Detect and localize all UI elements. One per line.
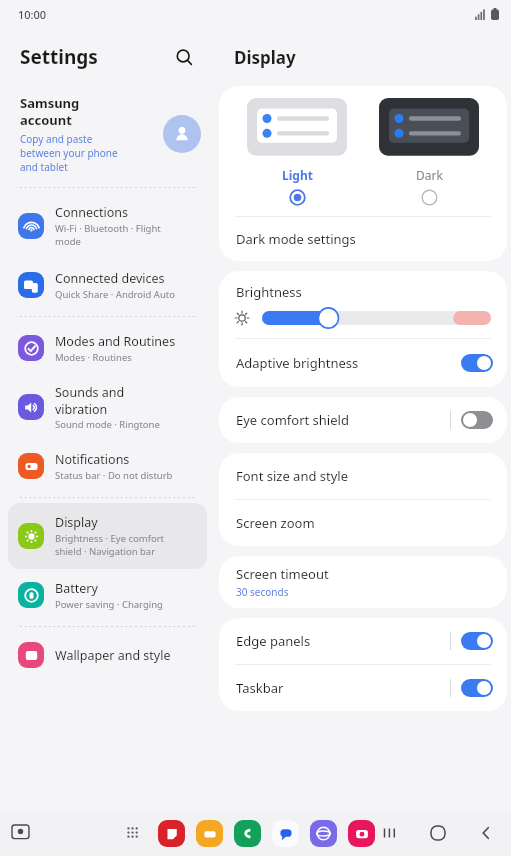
staticText: Eye comfort shield: [236, 411, 450, 429]
staticText: Sound mode · Ringtone: [55, 418, 160, 431]
staticText: Notifications: [55, 451, 130, 468]
staticText: Edge panels: [236, 632, 450, 650]
button[interactable]: Notifications: [8, 440, 207, 492]
button[interactable]: Internet: [310, 820, 337, 847]
staticText: Modes · Routines: [55, 351, 132, 364]
button[interactable]: Screen zoom: [219, 500, 507, 546]
staticText: Brightness · Eye comfort shield · Naviga…: [55, 532, 165, 558]
button[interactable]: Adaptive brightness: [219, 339, 507, 387]
button[interactable]: Samsung account: [0, 86, 215, 182]
staticText: Modes and Routines: [55, 333, 176, 350]
button[interactable]: Recents: [377, 820, 403, 846]
staticText: Wi-Fi · Bluetooth · Flight mode: [55, 222, 161, 248]
staticText: Wallpaper and style: [55, 647, 171, 664]
staticText: Quick Share · Android Auto: [55, 288, 175, 301]
button[interactable]: Recent apps panel: [6, 819, 34, 847]
button[interactable]: Phone: [234, 820, 261, 847]
staticText: Display: [234, 46, 296, 69]
staticText: Display: [55, 514, 98, 531]
staticText: Taskbar: [236, 679, 450, 697]
button[interactable]: Connected devices: [8, 259, 207, 311]
button[interactable]: Font size and style: [219, 453, 507, 499]
button[interactable]: Dark: [374, 98, 484, 214]
button[interactable]: Samsung Notes: [158, 820, 185, 847]
button[interactable]: My Files: [196, 820, 223, 847]
button[interactable]: Wallpaper and style: [8, 632, 207, 678]
button[interactable]: Apps: [121, 821, 147, 847]
staticText: Samsung account: [20, 94, 80, 129]
button[interactable]: Display: [8, 503, 207, 569]
staticText: Copy and paste between your phone and ta…: [20, 132, 118, 174]
button[interactable]: [262, 311, 491, 325]
button[interactable]: Edge panels: [219, 618, 507, 664]
staticText: Settings: [20, 44, 98, 70]
button[interactable]: Light: [242, 98, 352, 214]
staticText: Light: [282, 167, 313, 183]
staticText: Screen timeout: [236, 565, 329, 583]
button[interactable]: Eye comfort shield: [219, 397, 507, 443]
button[interactable]: Home: [425, 820, 451, 846]
button[interactable]: Screen timeout: [219, 556, 507, 608]
staticText: 30 seconds: [236, 585, 289, 599]
button[interactable]: Taskbar: [219, 665, 507, 711]
staticText: Font size and style: [236, 467, 349, 485]
button[interactable]: Dark mode settings: [219, 217, 507, 261]
staticText: Dark: [416, 167, 443, 183]
button[interactable]: Connections: [8, 193, 207, 259]
button[interactable]: Battery: [8, 569, 207, 621]
staticText: Connected devices: [55, 270, 165, 287]
staticText: Dark mode settings: [236, 230, 356, 248]
staticText: Screen zoom: [236, 514, 315, 532]
staticText: Battery: [55, 580, 98, 597]
button[interactable]: Search: [167, 40, 201, 74]
button[interactable]: Modes and Routines: [8, 322, 207, 374]
button[interactable]: Back: [473, 820, 499, 846]
staticText: Adaptive brightness: [236, 354, 461, 372]
staticText: Status bar · Do not disturb: [55, 469, 173, 482]
staticText: Connections: [55, 204, 128, 221]
staticText: Sounds and vibration: [55, 384, 125, 417]
staticText: Power saving · Charging: [55, 598, 163, 611]
button[interactable]: Sounds and vibration: [8, 374, 207, 440]
staticText: 10:00: [18, 7, 47, 22]
button[interactable]: Messages: [272, 820, 299, 847]
staticText: Brightness: [236, 283, 302, 301]
button[interactable]: Camera: [348, 820, 375, 847]
